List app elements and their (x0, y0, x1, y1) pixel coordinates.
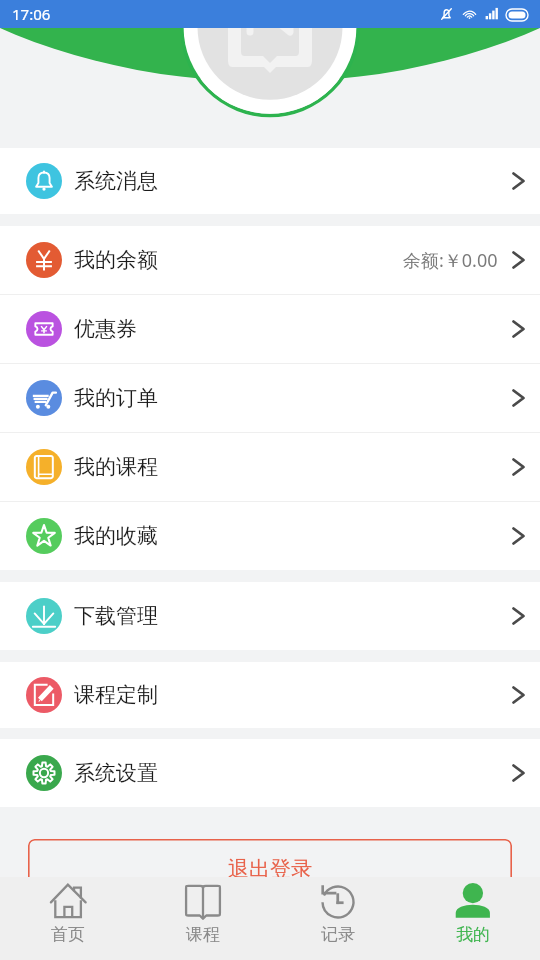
button[interactable]: 记录 (270, 877, 405, 960)
staticText: 记录 (321, 924, 355, 945)
button[interactable]: 系统消息 (0, 148, 540, 214)
button[interactable]: 首页 (0, 877, 135, 960)
staticText: 系统设置 (74, 760, 158, 786)
button[interactable]: 系统设置 (0, 739, 540, 807)
staticText: 优惠券 (74, 316, 137, 342)
button[interactable]: 下载管理 (0, 582, 540, 650)
button[interactable]: 退出登录 (28, 839, 512, 899)
staticText: 我的 (456, 924, 490, 945)
staticText: 我的课程 (74, 454, 158, 480)
staticText: 下载管理 (74, 603, 158, 629)
staticText: 我的订单 (74, 385, 158, 411)
staticText: 退出登录 (228, 856, 312, 882)
button[interactable]: 我的 (405, 877, 540, 960)
staticText: 我的余额 (74, 247, 158, 273)
button[interactable]: 我的订单 (0, 364, 540, 432)
staticText: 17:06 (12, 4, 51, 24)
button[interactable]: 我的课程 (0, 433, 540, 501)
button[interactable]: 课程定制 (0, 662, 540, 728)
staticText: 课程定制 (74, 682, 158, 708)
button[interactable]: 我的余额 (0, 226, 540, 294)
button[interactable]: 优惠券 (0, 295, 540, 363)
staticText: 我的收藏 (74, 523, 158, 549)
button[interactable]: 我的收藏 (0, 502, 540, 570)
staticText: 课程 (186, 924, 220, 945)
staticText: 首页 (51, 924, 85, 945)
staticText: 系统消息 (74, 168, 158, 194)
staticText: 余额:￥0.00 (403, 248, 498, 273)
button[interactable]: 课程 (135, 877, 270, 960)
